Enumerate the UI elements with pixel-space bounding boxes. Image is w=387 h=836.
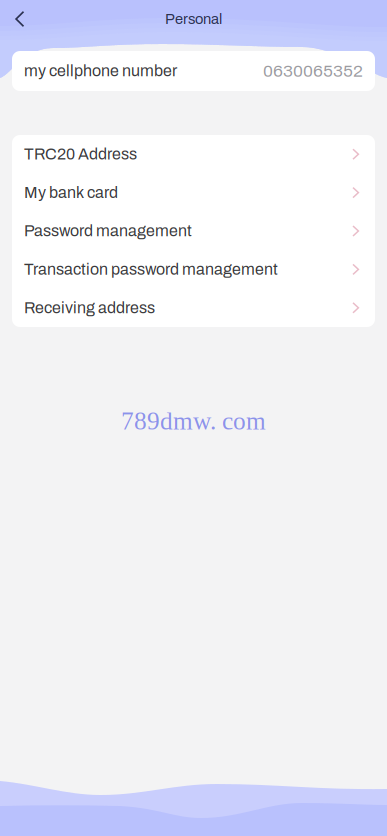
staticText: Transaction password management	[24, 261, 278, 278]
staticText: Receiving address	[24, 299, 155, 316]
button[interactable]: Password management	[12, 212, 375, 250]
button[interactable]: TRC20 Address	[12, 135, 375, 173]
button[interactable]: My bank card	[12, 173, 375, 212]
staticText: 789dmw. com	[121, 407, 266, 435]
staticText: TRC20 Address	[24, 145, 137, 163]
staticText: my cellphone number	[24, 62, 177, 80]
staticText: My bank card	[24, 184, 118, 201]
button[interactable]: Receiving address	[12, 289, 375, 327]
staticText: Personal	[165, 11, 222, 27]
button[interactable]: Transaction password management	[12, 250, 375, 289]
button[interactable]: Back	[0, 0, 40, 38]
staticText: Password management	[24, 222, 192, 240]
staticText: 0630065352	[263, 62, 363, 80]
